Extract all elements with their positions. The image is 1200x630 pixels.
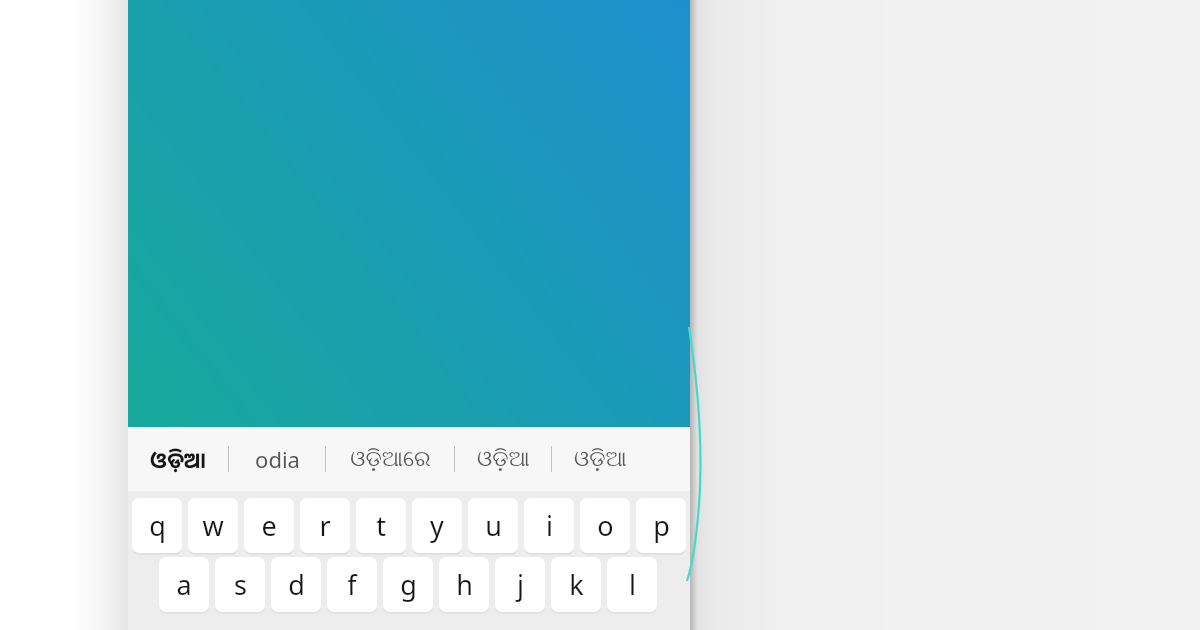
button[interactable]: i (524, 498, 574, 553)
staticText: k (569, 566, 584, 603)
staticText: ଓଡ଼ିଆ (477, 448, 530, 470)
staticText: t (376, 507, 386, 544)
button[interactable]: d (271, 557, 321, 612)
button[interactable]: y (412, 498, 462, 553)
staticText: w (202, 507, 224, 544)
staticText: l (629, 566, 636, 603)
staticText: d (288, 566, 305, 603)
button[interactable]: o (580, 498, 630, 553)
staticText: y (430, 507, 444, 544)
staticText: ଓଡ଼ିଆ (574, 448, 627, 470)
button[interactable]: e (244, 498, 294, 553)
button[interactable]: f (327, 557, 377, 612)
button[interactable]: q (132, 498, 182, 553)
staticText: a (176, 566, 192, 603)
button[interactable]: s (215, 557, 265, 612)
button[interactable]: a (159, 557, 209, 612)
staticText: ଓଡ଼ିଆରେ (350, 448, 431, 470)
staticText: o (597, 507, 614, 544)
staticText: r (319, 507, 331, 544)
staticText: j (517, 566, 524, 603)
button[interactable]: p (636, 498, 686, 553)
button[interactable]: ଓଡ଼ିଆ (455, 427, 551, 491)
staticText: h (456, 566, 473, 603)
button[interactable]: t (356, 498, 406, 553)
button[interactable]: g (383, 557, 433, 612)
button[interactable]: u (468, 498, 518, 553)
staticText: ଓଡ଼ିଆ (150, 444, 206, 474)
button[interactable]: Canvas area (128, 0, 690, 427)
button[interactable]: k (551, 557, 601, 612)
button[interactable]: l (607, 557, 657, 612)
button[interactable]: j (495, 557, 545, 612)
button[interactable]: w (188, 498, 238, 553)
staticText: s (234, 566, 247, 603)
staticText: odia (255, 444, 300, 474)
staticText: p (653, 507, 670, 544)
button[interactable]: ଓଡ଼ିଆ (552, 427, 648, 491)
staticText: i (546, 507, 553, 544)
staticText: f (347, 566, 357, 603)
staticText: g (400, 566, 417, 603)
button[interactable]: ଓଡ଼ିଆ (128, 427, 228, 491)
staticText: q (149, 507, 166, 544)
staticText: u (485, 507, 502, 544)
staticText: e (261, 507, 277, 544)
button[interactable]: odia (229, 427, 325, 491)
button[interactable]: r (300, 498, 350, 553)
button[interactable]: ଓଡ଼ିଆରେ (326, 427, 454, 491)
button[interactable]: h (439, 557, 489, 612)
